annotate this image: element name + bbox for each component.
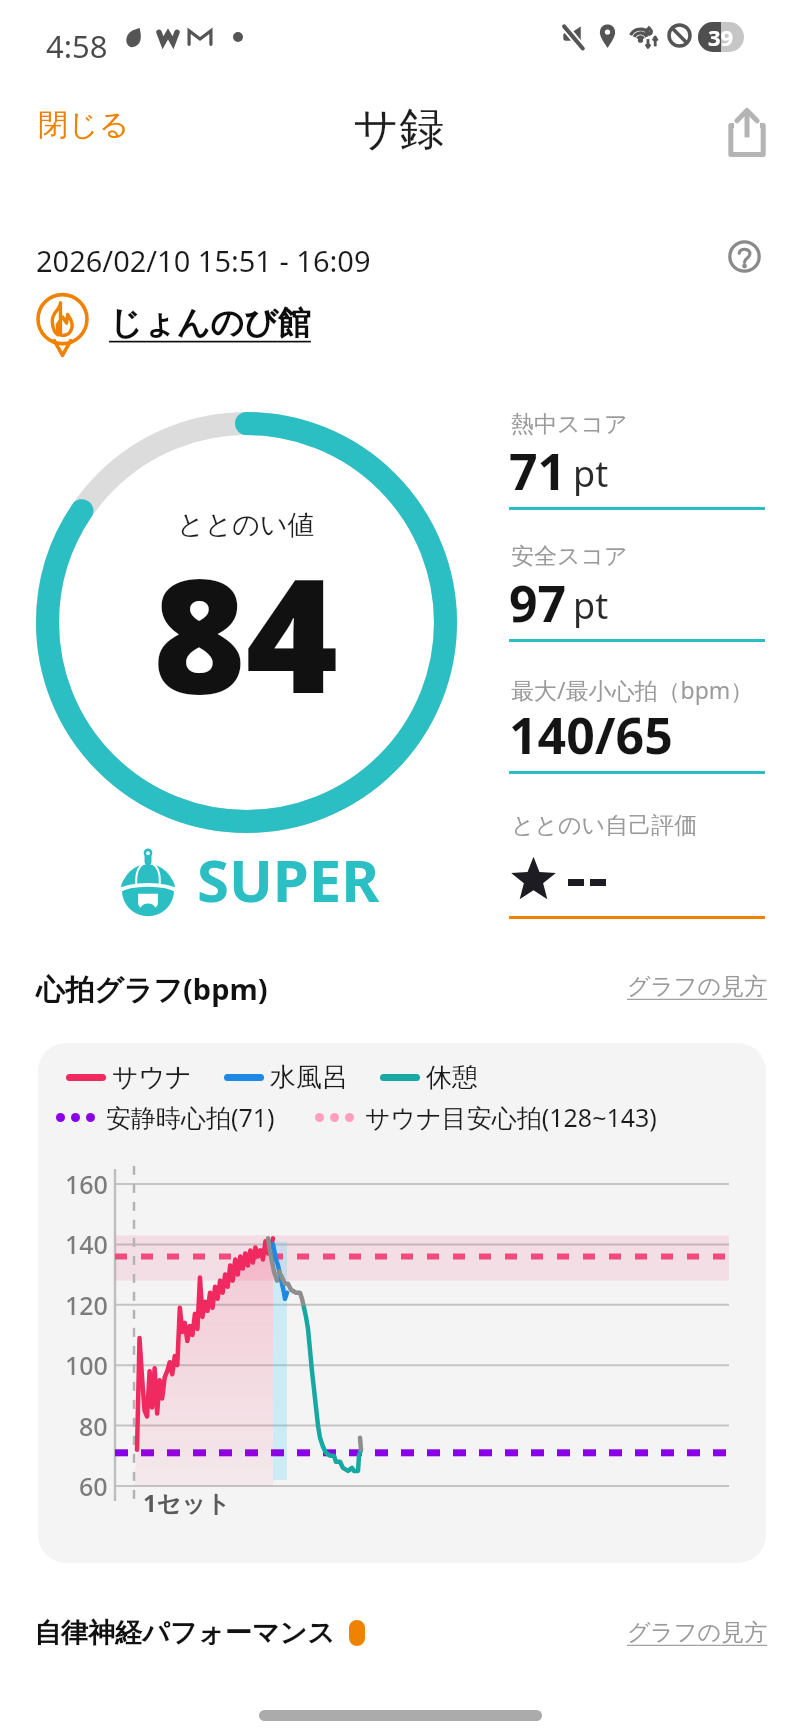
staticText: 140 — [65, 1227, 108, 1261]
staticText: 84 — [153, 524, 339, 739]
button[interactable]: グラフの見方 — [627, 1618, 768, 1647]
staticText: 71 — [509, 437, 567, 505]
staticText: 水風呂 — [270, 1061, 348, 1094]
staticText: 80 — [79, 1409, 108, 1443]
staticText: 140/65 — [509, 701, 673, 769]
staticText: 120 — [65, 1288, 108, 1322]
staticText: pt — [573, 581, 609, 630]
staticText: じょんのび館 — [109, 302, 311, 344]
staticText: 1セット — [143, 1486, 231, 1519]
staticText: ととのい値 — [177, 508, 315, 542]
button[interactable]: Help — [718, 230, 771, 283]
staticText: 休憩 — [426, 1061, 478, 1094]
staticText: pt — [573, 449, 609, 498]
button[interactable]: 熱中スコア — [509, 410, 765, 526]
button[interactable]: グラフの見方 — [627, 972, 768, 1001]
staticText: サウナ目安心拍(128~143) — [365, 1100, 657, 1134]
staticText: 安静時心拍(71) — [106, 1100, 275, 1134]
staticText: 自律神経パフォーマンス — [34, 1616, 335, 1650]
staticText: サウナ — [112, 1061, 192, 1094]
staticText: 心拍グラフ(bpm) — [36, 969, 268, 1009]
staticText: 4:58 — [46, 25, 108, 67]
button[interactable]: 閉じる — [20, 92, 148, 158]
staticText: 60 — [79, 1469, 108, 1503]
staticText: SUPER — [197, 840, 380, 919]
staticText: ととのい自己評価 — [511, 811, 698, 840]
staticText: グラフの見方 — [627, 972, 768, 1001]
staticText: 97 — [509, 569, 567, 637]
staticText: 最大/最小心拍（bpm） — [511, 674, 754, 705]
button[interactable]: ととのい自己評価 — [509, 811, 765, 919]
staticText: 100 — [65, 1348, 108, 1382]
staticText: 安全スコア — [511, 542, 628, 571]
staticText: グラフの見方 — [627, 1618, 768, 1647]
button[interactable]: Share — [717, 95, 777, 168]
button[interactable]: 安全スコア — [509, 542, 765, 658]
staticText: 閉じる — [38, 106, 130, 144]
staticText: 熱中スコア — [511, 410, 628, 439]
button[interactable]: 最大/最小心拍（bpm） — [509, 674, 765, 790]
button[interactable]: じょんのび館 — [37, 294, 311, 356]
staticText: 160 — [65, 1167, 108, 1201]
staticText: 2026/02/10 15:51 - 16:09 — [36, 241, 371, 280]
staticText: サ録 — [353, 101, 445, 158]
staticText: 39 — [708, 22, 734, 52]
